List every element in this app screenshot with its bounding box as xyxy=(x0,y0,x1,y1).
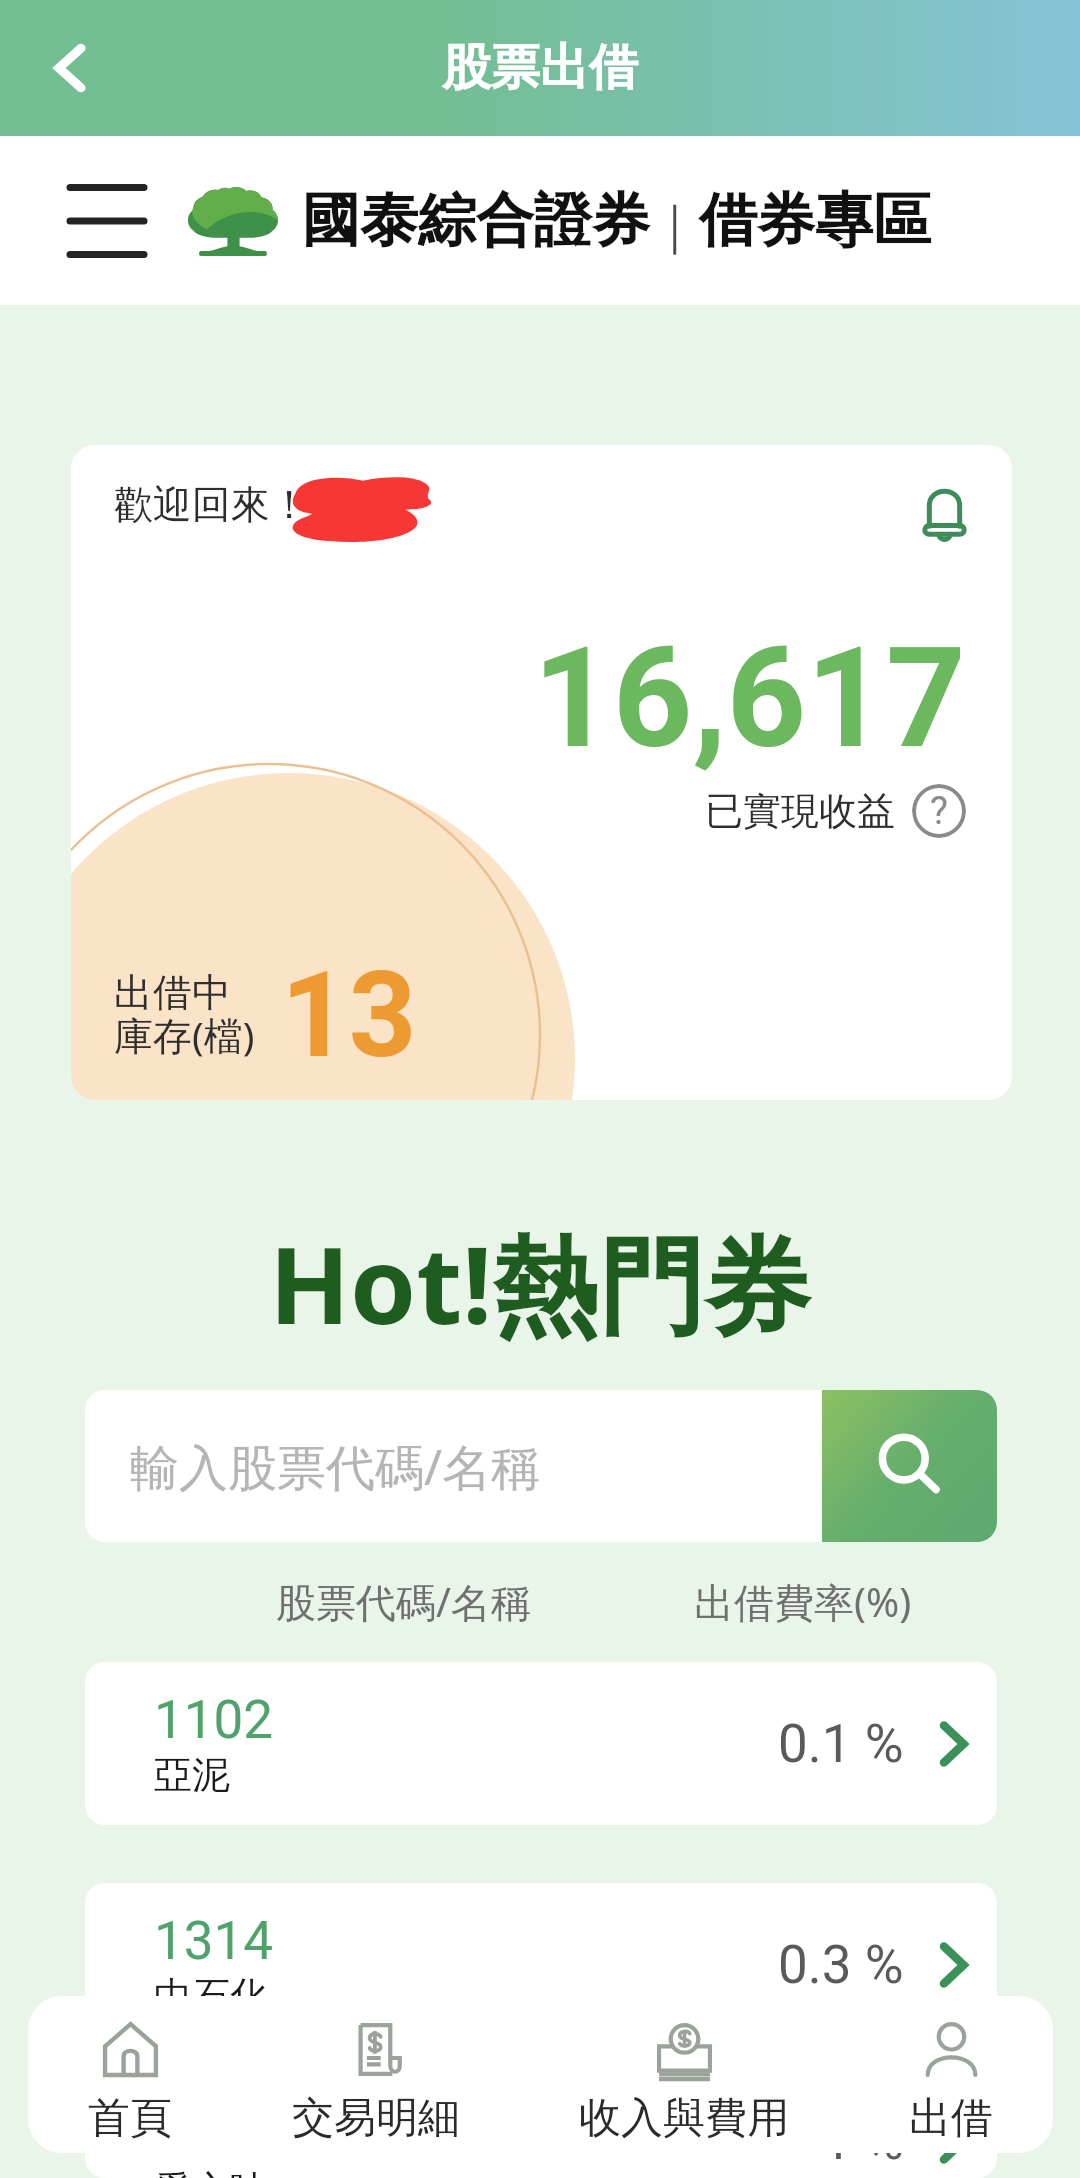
staticText: 輸入股票代碼/名稱 xyxy=(130,1433,541,1500)
staticText: ? xyxy=(930,789,948,834)
staticText: 1 % xyxy=(822,2110,904,2172)
button[interactable]: 收入與費用 xyxy=(579,1996,789,2153)
staticText: 股票代碼/名稱 xyxy=(276,1574,531,1629)
staticText: 1102 xyxy=(154,1689,274,1751)
staticText: 出借 xyxy=(909,2092,993,2145)
staticText: 愛之味 xyxy=(154,2166,268,2178)
button[interactable]: Help xyxy=(912,784,966,838)
button[interactable]: 交易明細 xyxy=(292,1996,460,2153)
staticText: 出借費率(%) xyxy=(694,1574,912,1629)
staticText: Hot!熱門券 xyxy=(269,1211,811,1356)
staticText: 歡迎回來！ xyxy=(114,480,309,529)
button[interactable]: Back xyxy=(30,28,110,108)
staticText: 國泰綜合證券 xyxy=(302,184,650,257)
button[interactable]: 1314 xyxy=(85,1883,997,2046)
staticText: 1314 xyxy=(154,1910,274,1972)
staticText: 出借中 xyxy=(114,968,231,1017)
staticText: 亞泥 xyxy=(154,1751,230,1799)
staticText: 股票出借 xyxy=(442,37,638,99)
staticText: 0.3 % xyxy=(778,1934,904,1996)
staticText: 收入與費用 xyxy=(579,2092,789,2145)
button[interactable]: 輸入股票代碼/名稱 xyxy=(85,1390,822,1542)
staticText: 13 xyxy=(281,947,417,1085)
button[interactable]: 歡迎回來！ xyxy=(71,445,1012,1100)
button[interactable]: Menu xyxy=(48,166,166,276)
staticText: ｜ xyxy=(650,194,699,257)
staticText: 16,617 xyxy=(533,617,966,780)
staticText: 首頁 xyxy=(88,2092,172,2145)
button[interactable]: Search xyxy=(822,1390,997,1542)
staticText: 庫存(檔) xyxy=(114,1008,255,1061)
button[interactable]: 1217 xyxy=(85,2104,997,2178)
button[interactable]: Notifications xyxy=(894,464,974,544)
button[interactable]: 1102 xyxy=(85,1662,997,1825)
staticText: 已實現收益 xyxy=(705,787,895,835)
staticText: 交易明細 xyxy=(292,2092,460,2145)
staticText: 借券專區 xyxy=(699,184,931,257)
staticText: 1217 xyxy=(154,2104,274,2166)
staticText: 0.1 % xyxy=(778,1713,904,1775)
button[interactable]: 首頁 xyxy=(88,1996,172,2153)
staticText: 中石化 xyxy=(154,1972,268,2020)
button[interactable]: 出借 xyxy=(909,1996,993,2153)
